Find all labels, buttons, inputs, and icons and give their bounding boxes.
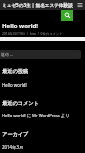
staticText: Hello world!	[2, 82, 27, 88]
staticText: ミュゼ5の3主 | 無名エステ体験談	[2, 2, 76, 8]
staticText: 最近のコメント	[2, 100, 39, 107]
staticText: Hello world! に Mr WordPress より	[2, 113, 70, 119]
button[interactable]	[0, 50, 81, 59]
button[interactable]: Search	[61, 10, 73, 21]
staticText: 2014年3月	[2, 144, 24, 150]
button[interactable]: Menu	[76, 1, 84, 9]
button[interactable]: Hello world!	[2, 82, 27, 88]
button[interactable]: 2014年3月	[2, 144, 24, 150]
staticText: Hello world!	[2, 22, 38, 30]
staticText: 最近の投稿	[2, 68, 29, 75]
button[interactable]: Hello world! に Mr WordPress より	[2, 113, 70, 119]
staticText: 返信 …	[1, 52, 14, 57]
staticText: アーカイブ	[2, 131, 29, 138]
staticText: 2014年3月19日 / hiro / 0件のコメント	[2, 31, 63, 36]
